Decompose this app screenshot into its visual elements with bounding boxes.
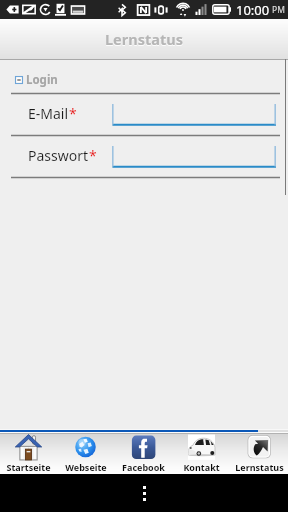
staticText: * bbox=[89, 146, 97, 165]
staticText: E-Mail bbox=[28, 104, 69, 123]
staticText: Startseite bbox=[6, 461, 51, 473]
button[interactable]: More options bbox=[130, 481, 158, 505]
staticText: Kontakt bbox=[183, 461, 220, 473]
staticText: Facebook bbox=[122, 461, 165, 473]
staticText: Webseite bbox=[65, 461, 107, 473]
button[interactable]: Facebook bbox=[114, 434, 172, 474]
staticText: Lernstatus bbox=[235, 461, 284, 473]
staticText: * bbox=[69, 104, 77, 123]
staticText: 10:00 bbox=[236, 1, 270, 19]
staticText: Lernstatus bbox=[105, 29, 183, 49]
button[interactable]: Lernstatus bbox=[230, 434, 288, 474]
staticText: Login bbox=[26, 72, 58, 88]
button[interactable]: Webseite bbox=[57, 434, 114, 474]
staticText: Passwort bbox=[28, 146, 89, 165]
button[interactable]: Kontakt bbox=[172, 434, 230, 474]
button[interactable]: Startseite bbox=[0, 434, 57, 474]
staticText: Lernstatus bbox=[105, 30, 183, 50]
staticText: PM bbox=[272, 4, 285, 16]
